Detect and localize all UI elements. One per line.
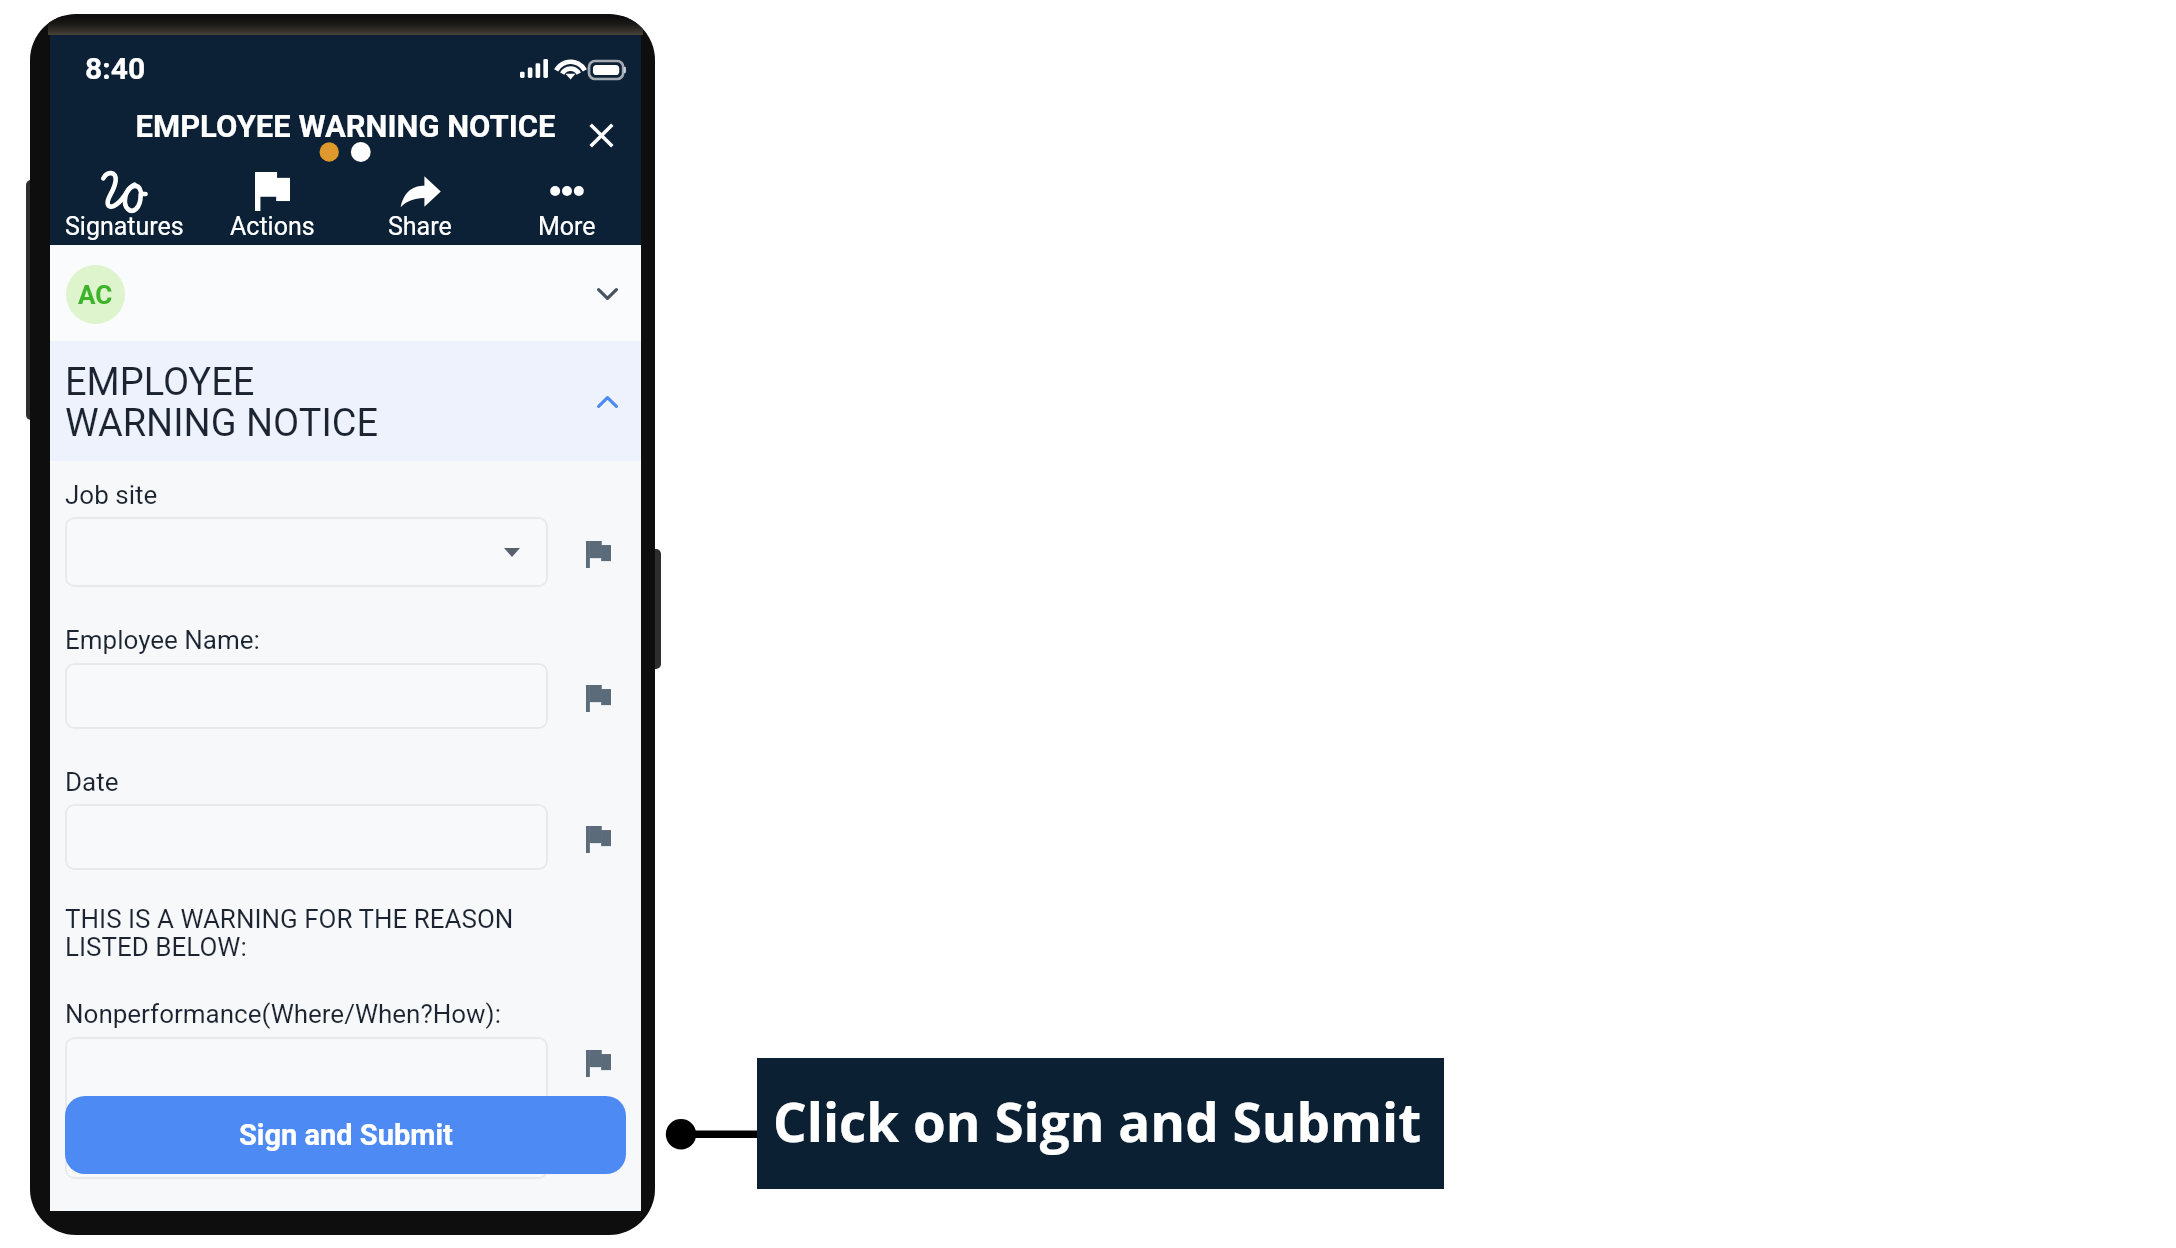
staticText: Signatures <box>65 212 184 241</box>
button[interactable]: Text field <box>65 804 548 870</box>
button[interactable]: Actions <box>198 170 346 245</box>
staticText: AC <box>78 280 113 310</box>
button[interactable]: Close <box>576 110 626 160</box>
staticText: Click on Sign and Submit <box>773 1085 1422 1157</box>
staticText: 8:40 <box>85 51 146 86</box>
staticText: EMPLOYEE WARNING NOTICE <box>65 360 379 446</box>
staticText: Share <box>388 212 452 241</box>
staticText: Date <box>65 767 119 797</box>
button[interactable]: Sign and Submit <box>65 1096 626 1174</box>
staticText: Employee Name: <box>65 625 260 655</box>
button[interactable]: Flag field <box>581 537 615 571</box>
staticText: Nonperformance(Where/When?How): <box>65 999 501 1029</box>
staticText: Sign and Submit <box>239 1118 453 1152</box>
staticText: Job site <box>65 480 158 510</box>
button[interactable]: Collapse section <box>590 385 624 419</box>
button[interactable]: Text field <box>65 663 548 729</box>
staticText: More <box>538 212 596 241</box>
staticText: EMPLOYEE WARNING NOTICE <box>50 108 641 144</box>
button[interactable]: Flag field <box>581 822 615 856</box>
button[interactable]: Expand account <box>590 277 624 311</box>
button[interactable]: Select value <box>65 517 548 587</box>
button[interactable]: More <box>493 170 641 245</box>
staticText: Actions <box>230 212 315 241</box>
button[interactable]: AC <box>50 245 641 341</box>
button[interactable]: Text field <box>65 1037 548 1179</box>
button[interactable]: EMPLOYEE WARNING NOTICE <box>50 341 641 461</box>
staticText: THIS IS A WARNING FOR THE REASON LISTED … <box>65 904 514 963</box>
button[interactable]: Flag field <box>581 1046 615 1080</box>
button[interactable]: Share <box>346 170 494 245</box>
button[interactable]: Signatures <box>50 170 198 245</box>
button[interactable]: Flag field <box>581 681 615 715</box>
